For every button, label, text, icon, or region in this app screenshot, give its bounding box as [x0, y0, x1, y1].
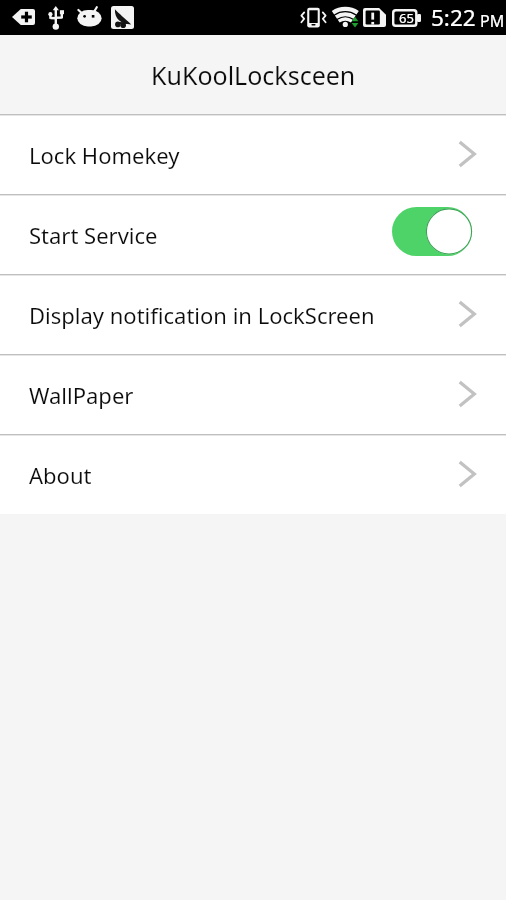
staticText: About — [29, 460, 92, 490]
staticText: PM — [480, 10, 505, 32]
staticText: 5:22 — [431, 2, 476, 33]
staticText: KuKoolLocksceen — [151, 58, 356, 92]
staticText: WallPaper — [29, 380, 134, 410]
staticText: Display notification in LockScreen — [29, 300, 375, 330]
button[interactable]: About — [0, 435, 506, 514]
button[interactable]: WallPaper — [0, 355, 506, 434]
staticText: 65 — [399, 9, 414, 27]
button[interactable]: Lock Homekey — [0, 115, 506, 194]
button[interactable]: Start Service — [0, 195, 506, 274]
staticText: Lock Homekey — [29, 140, 180, 170]
button[interactable]: Start Service toggle — [392, 207, 472, 256]
button[interactable]: Display notification in LockScreen — [0, 275, 506, 354]
staticText: Start Service — [29, 220, 158, 250]
